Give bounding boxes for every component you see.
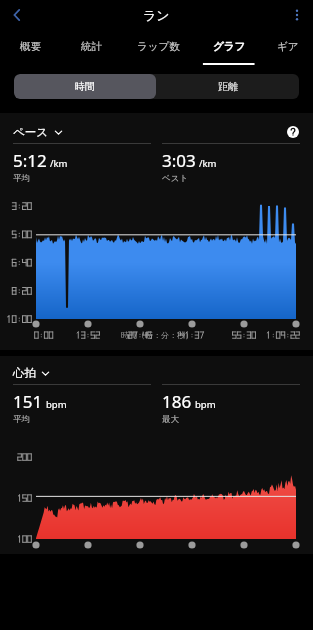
button[interactable]: 心拍 (13, 366, 50, 380)
staticText: ペース (13, 125, 49, 139)
staticText: 最大 (162, 414, 179, 425)
staticText: 5:12 (13, 149, 47, 172)
button[interactable]: ラップ数 (121, 30, 196, 62)
staticText: グラフ (213, 40, 246, 53)
button[interactable]: グラフ (196, 30, 262, 62)
staticText: 平均 (13, 173, 30, 184)
staticText: 心拍 (13, 366, 36, 380)
staticText: 統計 (81, 40, 102, 53)
button[interactable]: ペース (13, 125, 63, 139)
staticText: /km (199, 157, 217, 170)
staticText: 151 (13, 390, 43, 413)
button[interactable]: 統計 (61, 30, 121, 62)
button[interactable]: 距離 (156, 74, 299, 99)
staticText: 3:03 (162, 149, 196, 172)
button[interactable]: ギア (262, 30, 313, 62)
staticText: 平均 (13, 414, 30, 425)
staticText: ラン (143, 7, 170, 23)
staticText: bpm (46, 398, 67, 411)
staticText: 概要 (20, 40, 41, 53)
button[interactable]: More options (281, 0, 313, 30)
button[interactable]: Back (0, 0, 34, 30)
staticText: 186 (162, 390, 192, 413)
staticText: bpm (195, 398, 216, 411)
staticText: ギア (277, 40, 299, 53)
staticText: ラップ数 (137, 40, 180, 53)
button[interactable]: 概要 (0, 30, 61, 62)
staticText: 距離 (218, 80, 238, 93)
button[interactable]: Help (285, 124, 301, 140)
button[interactable]: 時間 (14, 74, 156, 99)
staticText: 時間 (75, 80, 95, 93)
staticText: 時間（時：分：秒） (121, 330, 193, 340)
staticText: ベスト (162, 173, 189, 184)
staticText: /km (50, 157, 68, 170)
